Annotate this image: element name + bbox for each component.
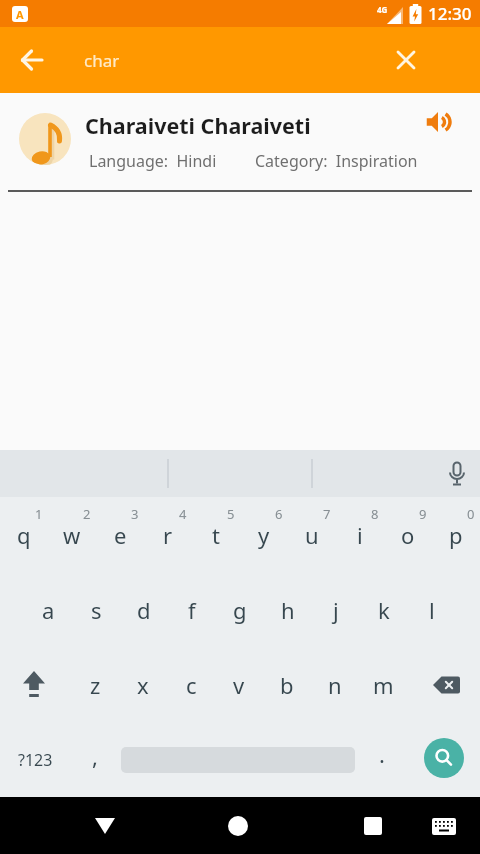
staticText: l — [429, 595, 435, 625]
button[interactable]: 2 — [48, 497, 96, 572]
staticText: m — [373, 670, 394, 700]
staticText: j — [333, 595, 339, 625]
staticText: 1 — [35, 505, 43, 523]
button[interactable] — [81, 802, 129, 850]
button[interactable]: . — [357, 722, 407, 797]
button[interactable] — [119, 722, 357, 797]
button[interactable]: x — [119, 647, 167, 722]
button[interactable]: h — [264, 572, 312, 647]
button[interactable] — [407, 647, 480, 722]
button[interactable]: 3 — [96, 497, 144, 572]
button[interactable]: g — [216, 572, 264, 647]
staticText: x — [137, 670, 149, 700]
staticText: p — [449, 520, 463, 550]
staticText: char — [84, 49, 120, 72]
staticText: s — [91, 595, 102, 625]
button[interactable] — [420, 802, 468, 850]
staticText: w — [63, 520, 81, 550]
staticText: 4G — [377, 4, 388, 15]
staticText: i — [357, 520, 363, 550]
button[interactable]: , — [71, 722, 119, 797]
button[interactable]: s — [72, 572, 120, 647]
button[interactable] — [382, 36, 430, 84]
button[interactable]: 8 — [336, 497, 384, 572]
button[interactable] — [8, 36, 56, 84]
staticText: a — [42, 595, 55, 625]
staticText: Charaiveti Charaiveti — [85, 111, 311, 140]
staticText: e — [114, 520, 127, 550]
staticText: A — [16, 7, 24, 22]
staticText: , — [92, 741, 98, 771]
staticText: n — [328, 670, 342, 700]
button[interactable]: 0 — [432, 497, 480, 572]
staticText: h — [281, 595, 295, 625]
staticText: o — [401, 520, 415, 550]
button[interactable]: Charaiveti Charaiveti — [0, 93, 480, 190]
button[interactable]: c — [167, 647, 215, 722]
button[interactable]: ?123 — [0, 722, 71, 797]
staticText: u — [305, 520, 319, 550]
staticText: g — [233, 595, 247, 625]
staticText: 7 — [323, 505, 331, 523]
button[interactable]: 7 — [288, 497, 336, 572]
staticText: 3 — [131, 505, 139, 523]
button[interactable] — [407, 722, 480, 797]
button[interactable]: b — [263, 647, 311, 722]
button[interactable]: 1 — [0, 497, 48, 572]
staticText: 2 — [83, 505, 91, 523]
button[interactable]: m — [359, 647, 407, 722]
staticText: 0 — [467, 505, 475, 523]
button[interactable]: n — [311, 647, 359, 722]
button[interactable]: k — [360, 572, 408, 647]
button[interactable]: 5 — [192, 497, 240, 572]
button[interactable]: l — [408, 572, 456, 647]
staticText: 4 — [179, 505, 187, 523]
button[interactable] — [422, 106, 454, 138]
staticText: 5 — [227, 505, 235, 523]
staticText: . — [379, 739, 385, 769]
staticText: c — [186, 670, 197, 700]
staticText: Language: Hindi — [89, 150, 217, 172]
button[interactable] — [0, 647, 71, 722]
button[interactable]: 9 — [384, 497, 432, 572]
staticText: v — [233, 670, 245, 700]
staticText: f — [188, 595, 196, 625]
staticText: 12:30 — [428, 2, 472, 25]
button[interactable] — [349, 802, 397, 850]
staticText: b — [280, 670, 294, 700]
staticText: Category: Inspiration — [255, 150, 418, 172]
button[interactable]: f — [168, 572, 216, 647]
button[interactable] — [214, 802, 262, 850]
staticText: 8 — [371, 505, 379, 523]
button[interactable]: j — [312, 572, 360, 647]
staticText: 6 — [275, 505, 283, 523]
button[interactable]: a — [24, 572, 72, 647]
button[interactable]: 6 — [240, 497, 288, 572]
staticText: y — [258, 520, 270, 550]
staticText: 9 — [419, 505, 427, 523]
button[interactable]: 4 — [144, 497, 192, 572]
button[interactable] — [434, 450, 480, 497]
button[interactable]: z — [71, 647, 119, 722]
button[interactable]: v — [215, 647, 263, 722]
staticText: q — [17, 520, 31, 550]
staticText: r — [163, 520, 173, 550]
staticText: t — [212, 520, 220, 550]
staticText: z — [90, 670, 101, 700]
staticText: ?123 — [18, 749, 53, 771]
staticText: d — [137, 595, 151, 625]
staticText: k — [378, 595, 390, 625]
button[interactable]: d — [120, 572, 168, 647]
